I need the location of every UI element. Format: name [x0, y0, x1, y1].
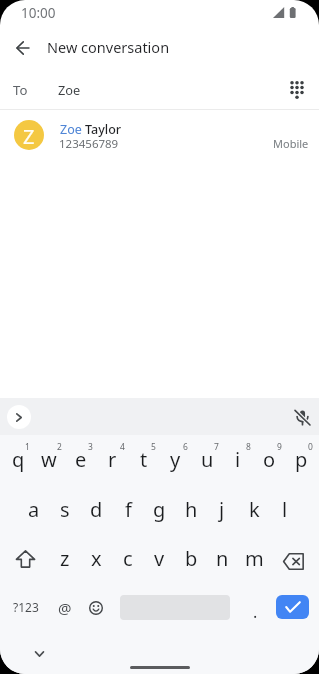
- staticText: y: [170, 446, 181, 473]
- button[interactable]: n: [206, 534, 238, 582]
- staticText: Zoe: [58, 81, 81, 98]
- button[interactable]: Space: [115, 583, 234, 631]
- staticText: 4: [120, 441, 125, 451]
- button[interactable]: c: [112, 534, 144, 582]
- staticText: n: [216, 545, 229, 572]
- staticText: x: [91, 545, 102, 572]
- button[interactable]: Hide keyboard: [23, 638, 55, 670]
- staticText: Mobile: [273, 136, 309, 151]
- staticText: k: [249, 496, 260, 523]
- button[interactable]: At symbol: [49, 584, 81, 630]
- staticText: b: [185, 545, 198, 572]
- staticText: d: [90, 496, 103, 523]
- staticText: m: [245, 545, 264, 572]
- button[interactable]: k: [238, 485, 270, 533]
- staticText: 2: [57, 441, 62, 451]
- button[interactable]: Emoji: [80, 584, 112, 630]
- staticText: 10:00: [21, 4, 56, 22]
- staticText: g: [153, 496, 166, 523]
- button[interactable]: Back: [6, 31, 39, 64]
- button[interactable]: Expand suggestions: [7, 405, 31, 429]
- staticText: e: [75, 446, 87, 473]
- staticText: u: [201, 446, 214, 473]
- staticText: r: [108, 446, 117, 473]
- button[interactable]: i: [222, 435, 254, 483]
- staticText: ?123: [13, 599, 39, 615]
- staticText: c: [123, 545, 133, 572]
- button[interactable]: Dialpad: [281, 74, 313, 106]
- button[interactable]: e: [65, 435, 97, 483]
- staticText: 1: [25, 441, 30, 451]
- staticText: 123456789: [59, 136, 119, 152]
- button[interactable]: s: [49, 485, 81, 533]
- button[interactable]: Shift: [5, 537, 45, 581]
- staticText: v: [154, 545, 165, 572]
- staticText: 6: [183, 441, 188, 451]
- staticText: t: [140, 446, 148, 473]
- button[interactable]: h: [175, 485, 207, 533]
- staticText: To: [13, 81, 28, 99]
- button[interactable]: m: [238, 534, 270, 582]
- staticText: 5: [151, 441, 156, 451]
- staticText: 3: [88, 441, 93, 451]
- staticText: Zoe Taylor: [60, 121, 122, 138]
- staticText: f: [125, 496, 132, 523]
- staticText: h: [185, 496, 198, 523]
- button[interactable]: b: [175, 534, 207, 582]
- button[interactable]: z: [49, 534, 81, 582]
- staticText: New conversation: [47, 37, 170, 57]
- button[interactable]: q: [2, 435, 34, 483]
- button[interactable]: Period: [239, 584, 269, 630]
- button[interactable]: w: [33, 435, 65, 483]
- button[interactable]: Done: [276, 595, 309, 619]
- button[interactable]: u: [191, 435, 223, 483]
- staticText: @: [58, 598, 72, 618]
- button[interactable]: d: [80, 485, 112, 533]
- button[interactable]: y: [159, 435, 191, 483]
- button[interactable]: x: [80, 534, 112, 582]
- staticText: w: [41, 446, 57, 473]
- staticText: j: [219, 496, 225, 523]
- staticText: 7: [214, 441, 219, 451]
- staticText: q: [12, 446, 25, 473]
- staticText: Z: [23, 123, 35, 150]
- staticText: l: [282, 496, 288, 523]
- button[interactable]: o: [253, 435, 285, 483]
- staticText: 8: [246, 441, 251, 451]
- staticText: a: [28, 496, 40, 523]
- button[interactable]: Z: [0, 110, 319, 160]
- staticText: 9: [277, 441, 282, 451]
- staticText: .: [253, 601, 258, 623]
- staticText: 0: [308, 441, 313, 451]
- button[interactable]: p: [285, 435, 317, 483]
- button[interactable]: a: [18, 485, 50, 533]
- staticText: i: [235, 446, 241, 473]
- button[interactable]: ?123: [4, 584, 48, 630]
- button[interactable]: v: [143, 534, 175, 582]
- button[interactable]: t: [128, 435, 160, 483]
- staticText: z: [60, 545, 70, 572]
- staticText: p: [295, 446, 308, 473]
- staticText: s: [60, 496, 70, 523]
- button[interactable]: l: [269, 485, 301, 533]
- button[interactable]: Voice input muted: [288, 403, 316, 431]
- button[interactable]: f: [112, 485, 144, 533]
- button[interactable]: Backspace: [273, 539, 313, 583]
- button[interactable]: j: [206, 485, 238, 533]
- button[interactable]: r: [96, 435, 128, 483]
- button[interactable]: g: [143, 485, 175, 533]
- staticText: o: [263, 446, 276, 473]
